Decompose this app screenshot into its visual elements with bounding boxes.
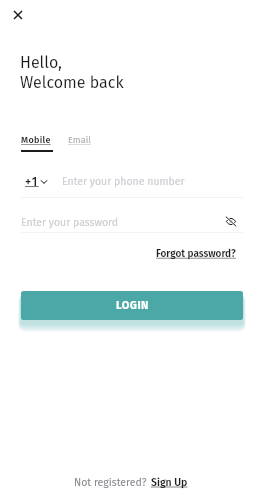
button[interactable]: Mobile: [21, 135, 51, 146]
staticText: Enter your phone number: [62, 175, 185, 188]
button[interactable]: Forgot password?: [156, 248, 236, 260]
staticText: +1: [25, 175, 39, 189]
button[interactable]: LOGIN: [21, 291, 243, 320]
staticText: Not registered?: [74, 476, 147, 489]
button[interactable]: +1: [25, 175, 47, 189]
button[interactable]: Sign Up: [151, 476, 188, 489]
staticText: Sign Up: [151, 476, 188, 489]
button[interactable]: Close: [10, 7, 26, 23]
staticText: LOGIN: [116, 299, 149, 312]
staticText: Forgot password?: [156, 248, 236, 260]
button[interactable]: Email: [68, 135, 92, 146]
button[interactable]: Show password: [223, 215, 238, 227]
staticText: Email: [68, 135, 92, 146]
staticText: Hello, Welcome back: [20, 53, 124, 92]
staticText: Enter your password: [21, 216, 119, 229]
staticText: Mobile: [21, 135, 51, 146]
